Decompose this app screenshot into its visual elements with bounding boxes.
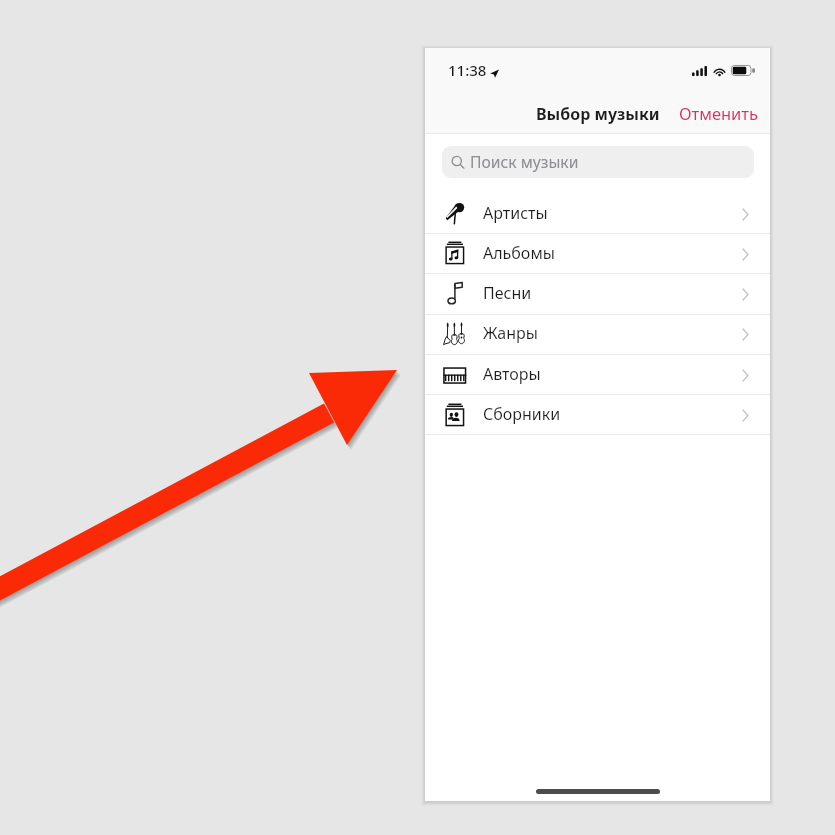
button[interactable]: Альбомы bbox=[425, 234, 770, 274]
staticText: Альбомы bbox=[483, 242, 555, 264]
staticText: Артисты bbox=[483, 202, 548, 224]
staticText: Выбор музыки bbox=[536, 103, 660, 125]
staticText: Отменить bbox=[679, 102, 759, 124]
staticText: Жанры bbox=[483, 322, 538, 344]
staticText: Авторы bbox=[483, 363, 541, 385]
button[interactable]: Артисты bbox=[425, 194, 770, 234]
button[interactable]: Песни bbox=[425, 274, 770, 314]
staticText: Поиск музыки bbox=[470, 151, 579, 172]
button[interactable]: Поиск музыки bbox=[442, 146, 754, 178]
button[interactable]: Жанры bbox=[425, 314, 770, 354]
button[interactable]: Сборники bbox=[425, 395, 770, 435]
button[interactable]: Отменить bbox=[668, 94, 770, 132]
button[interactable]: Авторы bbox=[425, 355, 770, 395]
staticText: 11:38 bbox=[448, 60, 487, 80]
other: Pointer arrow bbox=[0, 0, 835, 835]
staticText: Сборники bbox=[483, 403, 561, 425]
staticText: Песни bbox=[483, 282, 532, 304]
